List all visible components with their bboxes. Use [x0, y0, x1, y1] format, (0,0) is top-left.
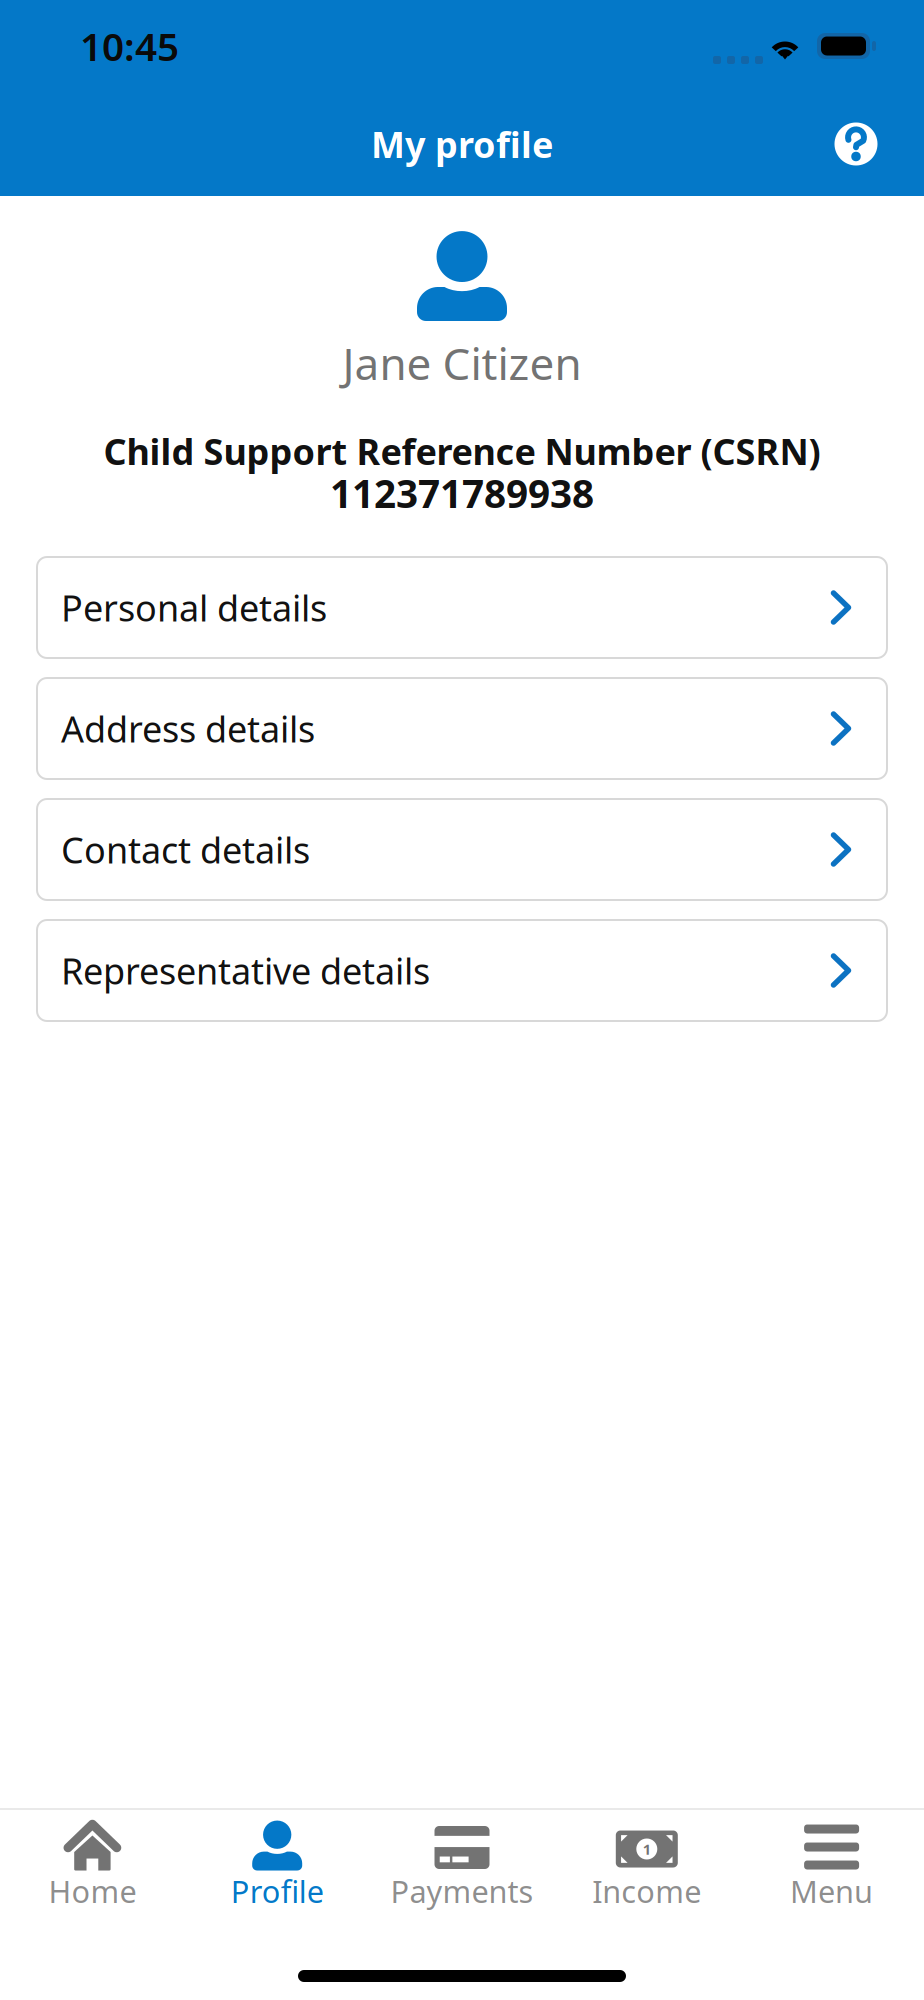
staticText: Income	[592, 1871, 701, 1911]
staticText: 10:45	[80, 20, 179, 72]
staticText: 1	[643, 1839, 651, 1859]
staticText: Menu	[790, 1871, 873, 1911]
staticText: Representative details	[61, 947, 430, 994]
staticText: Profile	[231, 1871, 324, 1911]
button[interactable]: Personal details	[37, 557, 887, 658]
button[interactable]: Menu	[739, 1809, 924, 1911]
staticText: 112371789938	[330, 467, 594, 519]
staticText: Jane Citizen	[342, 334, 581, 392]
button[interactable]: Payments	[370, 1809, 554, 1911]
button[interactable]: Contact details	[37, 799, 887, 900]
staticText: My profile	[371, 120, 553, 168]
button[interactable]: Profile	[185, 1809, 370, 1911]
button[interactable]: Home	[0, 1809, 185, 1911]
button[interactable]: 1	[554, 1809, 739, 1911]
button[interactable]: Representative details	[37, 920, 887, 1021]
button[interactable]: Help	[816, 104, 896, 184]
staticText: Payments	[390, 1871, 533, 1911]
staticText: Contact details	[61, 826, 310, 873]
button[interactable]: Address details	[37, 678, 887, 779]
staticText: Child Support Reference Number (CSRN)	[103, 427, 820, 475]
staticText: Address details	[61, 705, 315, 752]
staticText: Home	[48, 1871, 136, 1911]
staticText: Personal details	[61, 584, 327, 631]
